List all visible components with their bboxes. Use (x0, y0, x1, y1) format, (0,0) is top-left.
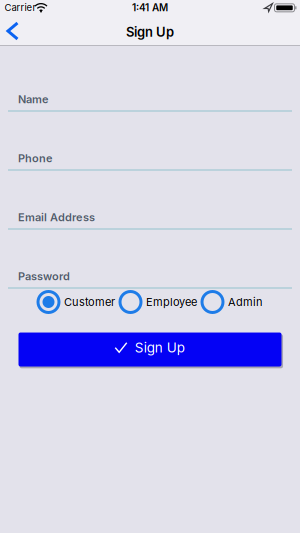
button[interactable]: Back (2, 17, 23, 45)
button[interactable]: Admin (202, 291, 262, 312)
staticText: Sign Up (135, 339, 185, 356)
staticText: 1:41 AM (132, 1, 168, 14)
staticText: Phone (18, 152, 53, 165)
button[interactable]: Phone (8, 141, 292, 171)
button[interactable]: Customer (38, 291, 115, 312)
button[interactable]: Sign Up (18, 332, 281, 366)
staticText: Carrier (4, 2, 36, 13)
button[interactable]: Employee (120, 291, 197, 312)
staticText: Email Address (18, 211, 95, 224)
staticText: Name (18, 93, 49, 106)
staticText: Employee (146, 295, 197, 309)
staticText: Password (18, 270, 70, 283)
staticText: Customer (64, 295, 115, 309)
button[interactable]: Email Address (8, 200, 292, 230)
button[interactable]: Password (8, 259, 292, 289)
staticText: Sign Up (126, 24, 174, 40)
button[interactable]: Name (8, 82, 292, 112)
staticText: Admin (228, 295, 262, 309)
